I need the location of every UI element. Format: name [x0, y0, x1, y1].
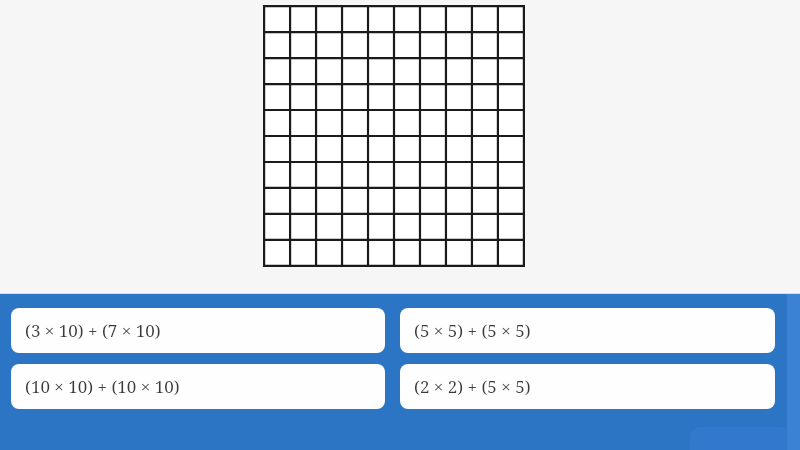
button[interactable]: (2 × 2) + (5 × 5)	[400, 364, 775, 409]
button[interactable]: (10 × 10) + (10 × 10)	[11, 364, 385, 409]
button[interactable]: (3 × 10) + (7 × 10)	[11, 308, 385, 353]
button[interactable]: (5 × 5) + (5 × 5)	[400, 308, 775, 353]
staticText: (3 × 10) + (7 × 10)	[25, 319, 161, 342]
staticText: (10 × 10) + (10 × 10)	[25, 375, 180, 398]
staticText: (5 × 5) + (5 × 5)	[414, 319, 531, 342]
staticText: (2 × 2) + (5 × 5)	[414, 375, 531, 398]
